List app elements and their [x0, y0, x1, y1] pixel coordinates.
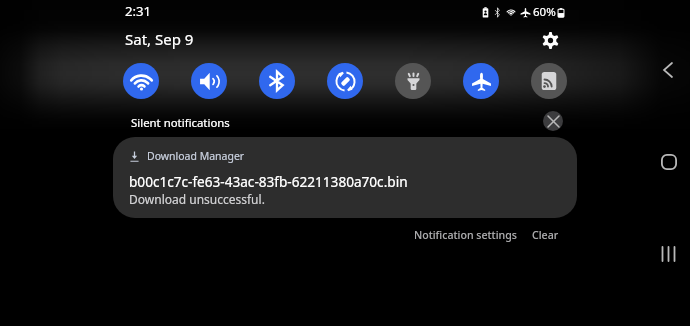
- button[interactable]: Back: [656, 58, 680, 82]
- staticText: 2:31: [125, 2, 152, 20]
- button[interactable]: Settings: [538, 28, 562, 52]
- button[interactable]: Smart View: [531, 63, 567, 99]
- button[interactable]: Sound: [191, 63, 227, 99]
- staticText: Clear: [532, 228, 559, 242]
- button[interactable]: Bluetooth: [259, 63, 295, 99]
- button[interactable]: Wi-Fi: [123, 63, 159, 99]
- button[interactable]: Dismiss all notifications: [543, 111, 563, 131]
- button[interactable]: Notification settings: [408, 224, 523, 246]
- button[interactable]: Flashlight: [395, 63, 431, 99]
- button[interactable]: Recent apps: [656, 242, 680, 266]
- staticText: Download unsuccessful.: [129, 191, 265, 207]
- button[interactable]: Clear: [526, 224, 565, 246]
- staticText: Silent notifications: [131, 115, 230, 131]
- staticText: Sat, Sep 9: [125, 29, 194, 49]
- button[interactable]: Airplane mode: [463, 63, 499, 99]
- button[interactable]: Home: [657, 150, 681, 174]
- staticText: b00c1c7c-fe63-43ac-83fb-62211380a70c.bin: [129, 172, 408, 191]
- staticText: Download Manager: [147, 149, 245, 163]
- button[interactable]: Download Manager: [113, 137, 577, 218]
- staticText: Notification settings: [414, 228, 517, 242]
- staticText: 60%: [533, 4, 556, 20]
- button[interactable]: Auto rotate: [327, 63, 363, 99]
